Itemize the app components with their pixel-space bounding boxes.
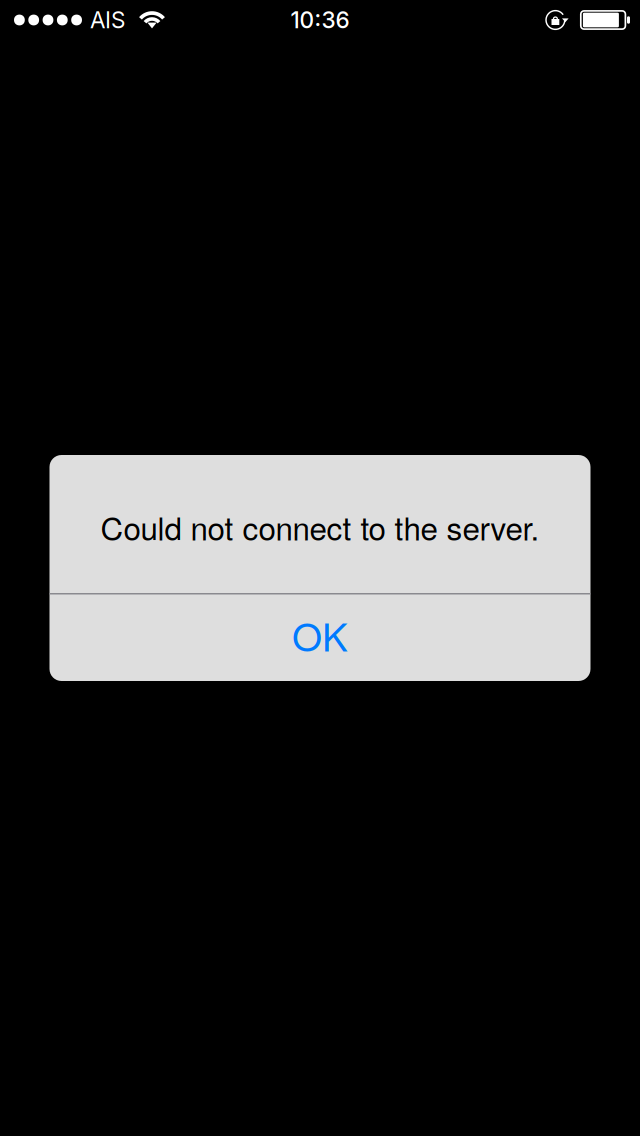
button[interactable]: OK bbox=[49, 594, 590, 681]
staticText: 10:36 bbox=[290, 6, 349, 34]
staticText: Could not connect to the server. bbox=[100, 505, 539, 549]
staticText: OK bbox=[292, 607, 348, 662]
staticText: AIS bbox=[90, 6, 125, 34]
